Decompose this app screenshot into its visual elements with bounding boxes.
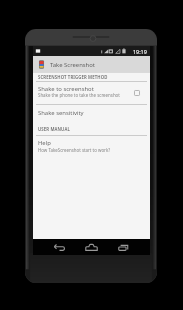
- button[interactable]: Recent apps: [117, 240, 131, 254]
- staticText: SCREENSHOT TRIGGER METHOD: [38, 74, 108, 80]
- staticText: Shake to screenshot: [38, 85, 94, 93]
- staticText: USER MANUAL: [38, 126, 70, 132]
- button[interactable]: Home: [84, 240, 98, 254]
- staticText: Shake sensitivity: [38, 109, 84, 117]
- button[interactable]: [33, 136, 150, 155]
- staticText: Help: [38, 139, 51, 147]
- button[interactable]: Take Screenshot: [33, 56, 150, 72]
- staticText: 19:19: [133, 48, 147, 55]
- button[interactable]: Back: [52, 240, 66, 254]
- staticText: Take Screenshot: [50, 61, 95, 69]
- staticText: Shake the phone to take the screenshot: [38, 92, 120, 98]
- staticText: How TakeScreenshot start to work?: [38, 147, 111, 153]
- button[interactable]: [33, 82, 150, 99]
- button[interactable]: Shake to screenshot toggle: [132, 88, 142, 98]
- button[interactable]: [33, 105, 150, 121]
